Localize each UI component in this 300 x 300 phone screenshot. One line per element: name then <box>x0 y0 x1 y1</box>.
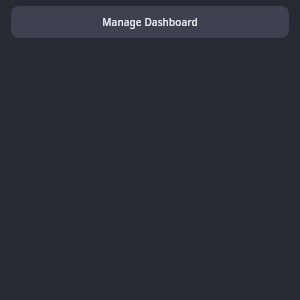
staticText: Manage Dashboard <box>102 15 198 29</box>
button[interactable]: Manage Dashboard <box>11 6 289 38</box>
